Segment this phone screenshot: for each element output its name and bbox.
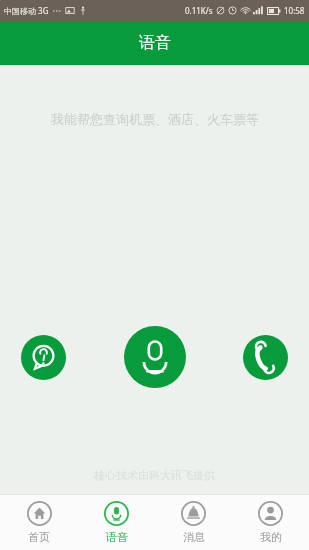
button[interactable]: 语音 [78, 495, 155, 550]
staticText: 首页 [28, 530, 50, 544]
staticText: 我的 [260, 530, 282, 544]
staticText: 中国移动 3G [4, 5, 49, 16]
button[interactable]: Voice input [124, 326, 186, 388]
staticText: 我能帮您查询机票、酒店、火车票等 [51, 111, 259, 127]
staticText: 核心技术由科大讯飞提供 [94, 468, 215, 482]
staticText: 消息 [183, 530, 205, 544]
staticText: 语音 [106, 530, 128, 544]
button[interactable]: 首页 [0, 495, 78, 550]
button[interactable]: Call [243, 335, 288, 380]
staticText: 10:58 [284, 5, 305, 16]
button[interactable]: Help [21, 335, 66, 380]
button[interactable]: 我的 [232, 495, 309, 550]
staticText: 0.11K/s [185, 5, 213, 16]
button[interactable]: 消息 [155, 495, 232, 550]
staticText: 语音 [139, 33, 171, 53]
